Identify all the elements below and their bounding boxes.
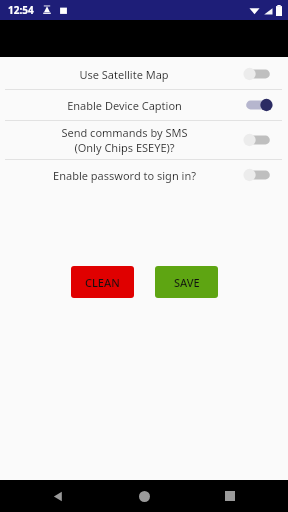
button[interactable]: Back: [30, 480, 86, 512]
button[interactable]: Use Satellite Map: [0, 59, 288, 89]
button[interactable]: Send commands by SMS: [0, 121, 288, 159]
button[interactable]: Recent apps: [202, 480, 258, 512]
staticText: SAVE: [174, 275, 200, 290]
button[interactable]: Toggle on: [242, 94, 274, 116]
button[interactable]: Enable password to sign in?: [0, 160, 288, 190]
button[interactable]: Enable Device Caption: [0, 90, 288, 120]
button[interactable]: CLEAN: [71, 266, 134, 298]
staticText: Send commands by SMS: [61, 125, 188, 140]
button[interactable]: Home: [116, 480, 172, 512]
button[interactable]: Toggle off: [242, 164, 274, 186]
staticText: 12:54: [8, 3, 34, 17]
staticText: CLEAN: [85, 275, 120, 290]
button[interactable]: SAVE: [155, 266, 218, 298]
staticText: Enable Device Caption: [67, 98, 182, 113]
staticText: Enable password to sign in?: [53, 168, 196, 183]
button[interactable]: Toggle off: [242, 129, 274, 151]
button[interactable]: Toggle off: [242, 63, 274, 85]
staticText: Use Satellite Map: [79, 67, 169, 82]
staticText: (Only Chips ESEYE)?: [74, 140, 175, 155]
